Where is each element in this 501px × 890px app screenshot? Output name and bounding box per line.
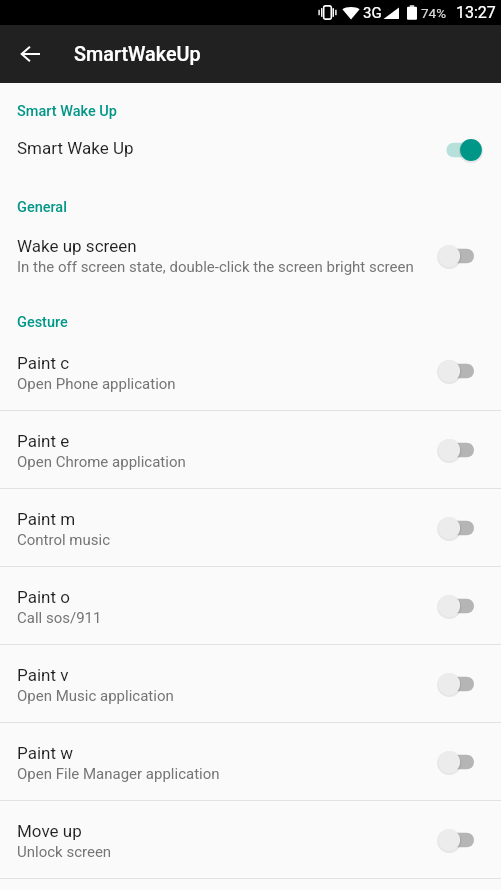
button[interactable]: Paint m [0, 489, 501, 566]
staticText: Move up [17, 821, 82, 841]
staticText: Wake up screen [17, 236, 137, 256]
staticText: Gesture [17, 314, 68, 331]
staticText: Paint o [17, 587, 70, 607]
staticText: Open Chrome application [17, 453, 186, 471]
staticText: Control music [17, 531, 111, 549]
button[interactable]: Move up off [443, 816, 493, 864]
button[interactable]: Move up [0, 801, 501, 878]
staticText: Paint m [17, 509, 76, 529]
staticText: Paint e [17, 431, 70, 451]
button[interactable]: Paint m off [443, 504, 493, 552]
button[interactable]: Paint w off [443, 738, 493, 786]
staticText: Paint v [17, 665, 69, 685]
button[interactable]: Paint w [0, 723, 501, 800]
staticText: Smart Wake Up [17, 103, 117, 120]
button[interactable]: Smart Wake Up on [443, 128, 493, 171]
staticText: 3G [363, 4, 382, 22]
button[interactable]: Wake up screen [0, 232, 501, 280]
button[interactable]: Wake up screen off [443, 232, 493, 280]
staticText: Unlock screen [17, 843, 112, 861]
button[interactable]: Paint e off [443, 426, 493, 474]
staticText: Open Music application [17, 687, 174, 705]
staticText: Paint c [17, 353, 70, 373]
staticText: Open Phone application [17, 375, 176, 393]
button[interactable]: Smart Wake Up [0, 123, 501, 171]
button[interactable]: Paint o [0, 567, 501, 644]
button[interactable]: Paint c [0, 332, 501, 410]
staticText: In the off screen state, double-click th… [17, 258, 414, 276]
staticText: Open File Manager application [17, 765, 220, 783]
staticText: 74% [421, 5, 447, 21]
button[interactable]: Paint v off [443, 660, 493, 708]
button[interactable]: Paint c off [443, 347, 493, 395]
button[interactable]: Paint v [0, 645, 501, 722]
staticText: SmartWakeUp [74, 43, 201, 66]
button[interactable]: Navigate up [6, 30, 54, 78]
staticText: 13:27 [456, 3, 496, 22]
staticText: Smart Wake Up [17, 138, 134, 158]
button[interactable]: Paint e [0, 411, 501, 488]
staticText: Call sos/911 [17, 609, 102, 627]
staticText: Paint w [17, 743, 73, 763]
button[interactable]: Paint o off [443, 582, 493, 630]
staticText: General [17, 199, 67, 216]
